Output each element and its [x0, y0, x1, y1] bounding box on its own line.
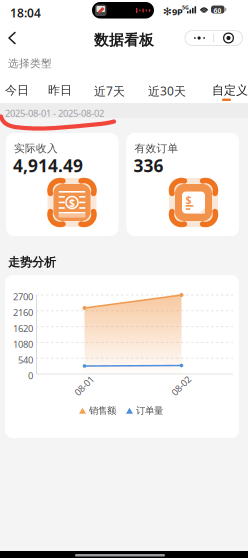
staticText: 近30天 [148, 83, 186, 99]
staticText: 18:04 [10, 5, 41, 21]
staticText: ✻ [163, 5, 172, 18]
staticText: 08-02 [169, 379, 192, 392]
staticText: 2700 [13, 290, 33, 303]
staticText: 1620 [13, 322, 33, 334]
staticText: 数据看板 [94, 31, 154, 49]
staticText: 有效订单 [134, 142, 178, 155]
staticText: 今日 [5, 83, 29, 98]
staticText: 4,914.49 [13, 154, 83, 177]
staticText: 336 [133, 154, 163, 177]
staticText: $ [69, 195, 75, 210]
staticText: 选择类型 [8, 57, 52, 70]
staticText: 自定义 [212, 83, 248, 98]
staticText: 0 [28, 369, 33, 382]
staticText: 订单量 [136, 405, 163, 416]
staticText: 近7天 [94, 83, 125, 99]
staticText: $ [185, 192, 191, 207]
staticText: 销售额 [89, 405, 116, 416]
staticText: 1080 [13, 338, 33, 350]
staticText: 9P [172, 5, 183, 18]
staticText: 08-01 [72, 379, 95, 392]
staticText: 走势分析 [8, 255, 56, 270]
staticText: 2160 [13, 306, 33, 319]
staticText: 昨日 [48, 83, 72, 98]
staticText: 60 [213, 6, 221, 15]
staticText: 540 [18, 354, 33, 366]
staticText: 5G [182, 4, 189, 11]
staticText: 2025-08-01 - 2025-08-02 [5, 107, 104, 119]
staticText: 实际收入 [14, 142, 58, 155]
